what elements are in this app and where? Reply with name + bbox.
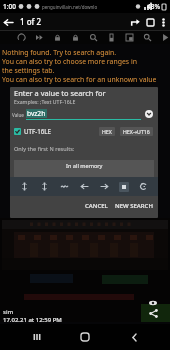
- button[interactable]: CANCEL: [83, 200, 110, 212]
- button[interactable]: More options: [157, 16, 169, 28]
- staticText: sim: [3, 308, 14, 316]
- button[interactable]: Lock: [48, 30, 66, 44]
- button[interactable]: HEX: [99, 127, 115, 136]
- button[interactable]: Back: [122, 325, 146, 349]
- button[interactable]: Show history: [145, 110, 153, 118]
- button[interactable]: Less: [39, 181, 50, 192]
- button[interactable]: In all memory: [14, 160, 154, 177]
- button[interactable]: Approximately: [59, 181, 70, 192]
- button[interactable]: Brightness: [102, 30, 120, 44]
- staticText: NEW SEARCH: [115, 202, 153, 210]
- button[interactable]: Replay: [12, 30, 30, 44]
- staticText: Examples: ;Text UTF-16LE: [14, 98, 76, 105]
- staticText: Value: [12, 112, 24, 118]
- button[interactable]: Picture in picture: [120, 30, 138, 44]
- button[interactable]: Decrease: [79, 181, 90, 192]
- button[interactable]: Search: [138, 30, 156, 44]
- button[interactable]: [14, 128, 21, 135]
- staticText: You can also try to choose more ranges i…: [2, 57, 137, 66]
- staticText: the settings tab.: [2, 66, 55, 75]
- staticText: bvz2h: [27, 109, 46, 118]
- button[interactable]: Zoom: [84, 30, 102, 44]
- staticText: 1:00: [3, 2, 16, 11]
- staticText: You can also try to search for an unknow…: [2, 75, 157, 84]
- button[interactable]: Home: [73, 325, 97, 349]
- staticText: HEX→UT16: [123, 128, 150, 135]
- button[interactable]: Preview: [147, 297, 158, 308]
- staticText: 48%: [147, 2, 160, 11]
- button[interactable]: History: [138, 181, 149, 192]
- button[interactable]: Recent apps: [25, 325, 49, 349]
- staticText: Nothing found. Try to search again.: [2, 48, 117, 57]
- button[interactable]: Greater: [19, 181, 30, 192]
- button[interactable]: Share: [127, 14, 143, 30]
- button[interactable]: Tabs: [143, 15, 157, 29]
- staticText: 1 of 2: [20, 16, 42, 27]
- staticText: HEX: [102, 128, 112, 135]
- staticText: In all memory: [66, 162, 103, 170]
- staticText: Only the first N results:: [14, 145, 75, 153]
- button[interactable]: Fast forward: [30, 30, 48, 44]
- button[interactable]: Stop: [119, 182, 129, 192]
- button[interactable]: Back: [0, 14, 16, 30]
- staticText: Enter a value to search for: [14, 88, 106, 98]
- staticText: UTF-16LE: [24, 127, 51, 135]
- button[interactable]: Play: [156, 30, 170, 44]
- staticText: CANCEL: [85, 202, 108, 210]
- button[interactable]: Unlock: [66, 30, 84, 44]
- staticText: penguinvillain.net/downlo: [42, 4, 98, 10]
- button[interactable]: Share: [146, 306, 160, 320]
- button[interactable]: Increase: [99, 181, 110, 192]
- button[interactable]: NEW SEARCH: [113, 200, 155, 212]
- staticText: 17.02.21 at 12:59 PM: [3, 316, 62, 324]
- button[interactable]: HEX→UT16: [120, 127, 153, 136]
